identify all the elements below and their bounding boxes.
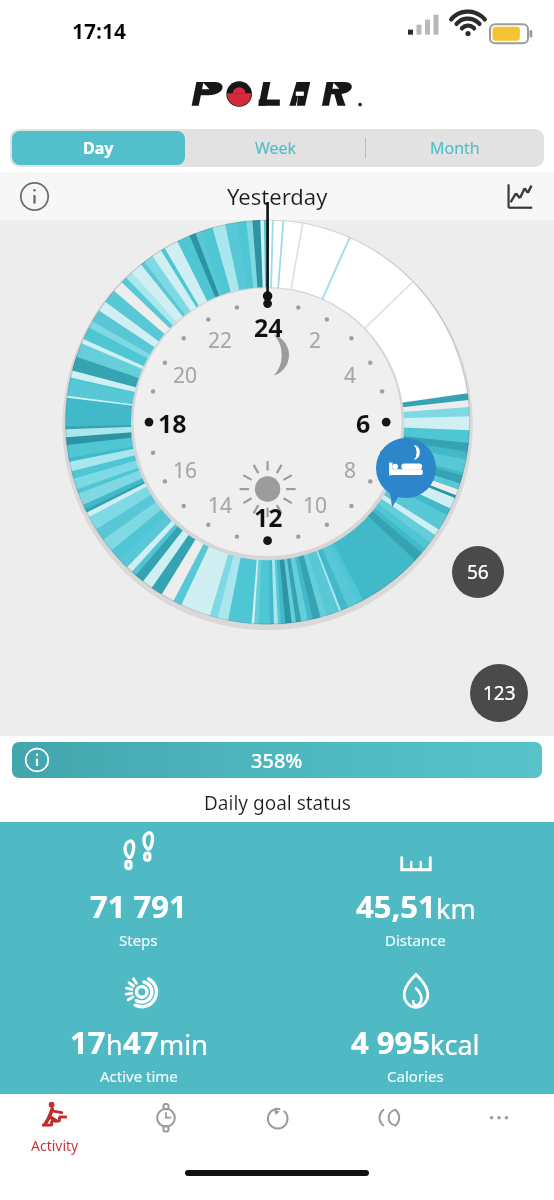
staticText: kcal [430,1026,480,1063]
staticText: 20 [173,361,198,390]
staticText: Distance [385,930,446,950]
staticText: 8 [344,456,357,485]
staticText: 18 [158,406,187,440]
button[interactable]: 71 791 [0,832,277,950]
button[interactable]: Sleep [376,438,436,508]
staticText: Month [430,137,480,159]
button[interactable]: Activity [0,1094,110,1160]
button[interactable]: 45,51 [277,832,554,950]
staticText: 71 791 [90,885,187,927]
staticText: Day [83,137,114,159]
button[interactable]: Trends chart [498,174,542,218]
button[interactable]: Month [366,129,544,167]
staticText: 17 [70,1021,106,1063]
button[interactable]: Info [12,174,56,218]
button[interactable]: Watch [110,1094,221,1160]
button[interactable]: 123 [470,664,528,722]
staticText: Daily goal status [204,790,351,816]
button[interactable]: More [443,1094,554,1160]
staticText: 16 [173,456,198,485]
button[interactable]: Day [12,131,185,165]
staticText: Yesterday [227,181,328,211]
button[interactable]: Sleep [332,1094,443,1160]
staticText: 4 995 [351,1021,430,1063]
staticText: 17:14 [72,17,126,46]
staticText: 47 [123,1021,159,1063]
staticText: 4 [344,361,357,390]
staticText: 12 [254,500,283,534]
staticText: Activity [31,1136,79,1155]
staticText: 45,51 [356,885,436,927]
staticText: 14 [208,491,233,520]
button[interactable]: 17 [0,968,277,1086]
button[interactable]: 358% [12,742,542,778]
staticText: 56 [467,559,489,585]
button[interactable]: 4 995 [277,968,554,1086]
staticText: 10 [303,491,328,520]
staticText: Active time [100,1066,178,1086]
staticText: 2 [309,326,322,355]
staticText: 6 [356,406,371,440]
button[interactable]: Recovery [221,1094,332,1160]
staticText: 22 [208,326,233,355]
staticText: Steps [119,930,158,950]
button[interactable]: Week [187,129,365,167]
staticText: Week [255,137,297,159]
staticText: h [106,1026,123,1063]
staticText: 123 [483,680,516,706]
staticText: 24 [254,310,283,344]
staticText: 358% [251,747,303,774]
staticText: Calories [387,1066,444,1086]
staticText: min [159,1026,208,1063]
staticText: km [436,890,476,927]
button[interactable]: 56 [452,546,504,598]
